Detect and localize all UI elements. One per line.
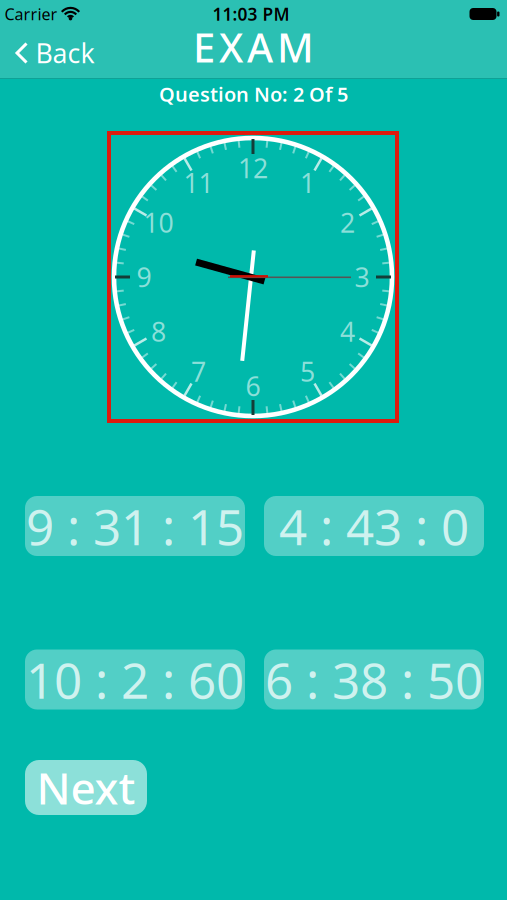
staticText: 6 : 38 : 50 <box>265 647 483 712</box>
staticText: 8 <box>151 314 166 349</box>
staticText: 12 <box>238 150 268 186</box>
staticText: Question No: 2 Of 5 <box>159 81 348 107</box>
button[interactable]: Next <box>25 760 147 815</box>
button[interactable]: 6 : 38 : 50 <box>264 649 484 709</box>
staticText: 7 <box>191 354 206 389</box>
button[interactable]: 4 : 43 : 0 <box>264 496 484 556</box>
staticText: 4 <box>340 314 355 349</box>
staticText: Next <box>36 758 135 817</box>
staticText: 9 : 31 : 15 <box>26 493 244 559</box>
staticText: 9 <box>136 259 151 295</box>
staticText: 2 <box>340 205 355 240</box>
staticText: 4 : 43 : 0 <box>279 493 469 559</box>
staticText: 10 <box>144 205 174 240</box>
button[interactable]: 10 : 2 : 60 <box>25 649 245 709</box>
staticText: 11:03 PM <box>212 2 289 25</box>
button[interactable]: 9 : 31 : 15 <box>25 496 245 556</box>
staticText: 5 <box>300 354 315 389</box>
staticText: 3 <box>354 259 369 295</box>
staticText: 6 <box>245 368 260 404</box>
staticText: Back <box>35 35 94 71</box>
staticText: 10 : 2 : 60 <box>26 647 244 712</box>
staticText: 11 <box>183 165 213 200</box>
staticText: 1 <box>300 165 315 200</box>
staticText: Carrier <box>4 3 57 25</box>
button[interactable]: Back <box>15 35 94 71</box>
staticText: EXAM <box>193 20 314 73</box>
